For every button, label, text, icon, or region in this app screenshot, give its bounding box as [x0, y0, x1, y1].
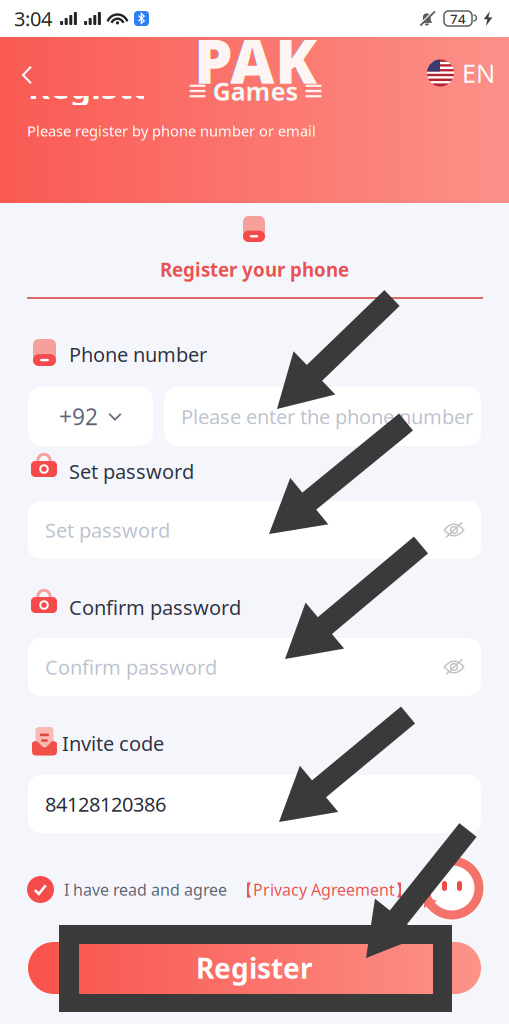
button[interactable]: +92: [28, 387, 153, 446]
staticText: I have read and agree: [64, 879, 227, 900]
staticText: +92: [59, 401, 98, 431]
staticText: Confirm password: [45, 654, 217, 680]
staticText: EN: [462, 56, 495, 90]
button[interactable]: Register: [28, 942, 481, 994]
button[interactable]: Customer support: [419, 855, 485, 921]
button[interactable]: I have read and agree: [27, 876, 411, 903]
button[interactable]: Confirm password: [28, 638, 481, 696]
staticText: Please register by phone number or email: [27, 121, 316, 140]
staticText: Register: [28, 64, 167, 108]
staticText: Please enter the phone number: [181, 403, 473, 430]
staticText: Set password: [69, 458, 194, 485]
staticText: Register your phone: [160, 257, 349, 282]
staticText: Invite code: [62, 730, 164, 757]
button[interactable]: Back: [5, 54, 49, 96]
staticText: 84128120386: [45, 791, 166, 817]
staticText: Games: [212, 74, 298, 108]
button[interactable]: Set password: [28, 501, 481, 559]
staticText: Phone number: [69, 341, 207, 368]
staticText: Set password: [45, 517, 170, 543]
button[interactable]: Please enter the phone number: [164, 387, 481, 446]
staticText: Confirm password: [69, 594, 241, 621]
staticText: Register: [196, 949, 313, 987]
staticText: PAK: [194, 19, 317, 101]
button[interactable]: 84128120386: [28, 775, 481, 833]
button[interactable]: EN: [427, 58, 495, 88]
staticText: 3:04: [14, 5, 52, 32]
staticText: 【Privacy Agreement】: [237, 879, 411, 900]
staticText: 74: [450, 10, 466, 27]
